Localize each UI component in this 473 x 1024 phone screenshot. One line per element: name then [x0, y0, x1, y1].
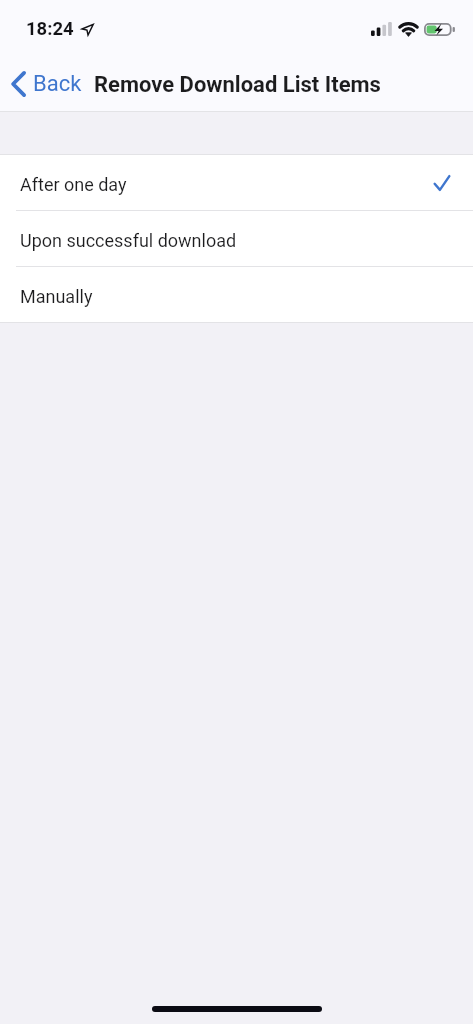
- button[interactable]: Manually: [0, 267, 473, 322]
- button[interactable]: After one day: [0, 155, 473, 210]
- staticText: 18:24: [26, 18, 74, 40]
- staticText: Manually: [20, 286, 93, 307]
- staticText: Upon successful download: [20, 230, 237, 251]
- button[interactable]: Back: [0, 64, 88, 102]
- staticText: Back: [33, 71, 82, 97]
- other: Selected: [434, 175, 450, 191]
- staticText: After one day: [20, 174, 127, 195]
- staticText: Remove Download List Items: [94, 72, 381, 98]
- button[interactable]: Upon successful download: [0, 211, 473, 266]
